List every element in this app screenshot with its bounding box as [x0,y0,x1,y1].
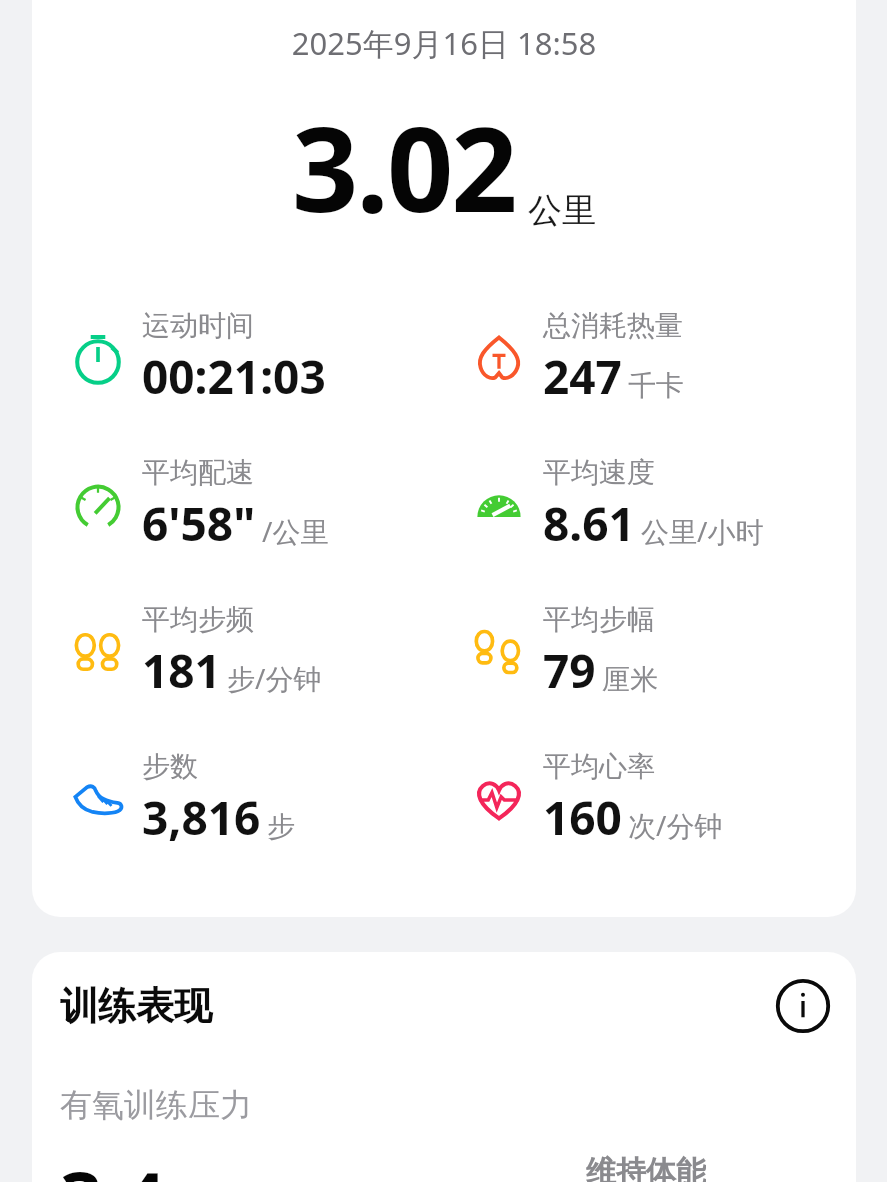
staticText: 公里/小时 [641,512,764,550]
button[interactable]: 总消耗热量 [444,308,856,408]
staticText: 平均心率 [543,749,655,784]
staticText: 6'58" [142,492,256,555]
staticText: 160 [543,786,622,849]
staticText: 训练表现 [60,982,212,1030]
staticText: 平均步幅 [543,602,655,637]
staticText: 3,816 [142,786,261,849]
staticText: 次/分钟 [628,806,723,844]
button[interactable]: 平均速度 [444,455,856,555]
button[interactable]: 运动时间 [32,308,444,408]
button[interactable]: 平均步频 [32,602,444,702]
staticText: 79 [543,639,596,702]
staticText: 步数 [142,749,198,784]
staticText: 平均步频 [142,602,254,637]
staticText: 公里 [528,189,596,232]
button[interactable]: 平均配速 [32,455,444,555]
staticText: 有氧训练压力 [60,1085,252,1125]
button[interactable]: 平均心率 [444,749,856,849]
staticText: 3.4 [60,1147,166,1182]
staticText: 181 [142,639,221,702]
staticText: 3.02 [292,88,516,246]
staticText: 平均配速 [142,455,254,490]
staticText: 厘米 [602,662,658,697]
staticText: 00:21:03 [142,345,326,408]
button[interactable]: 平均步幅 [444,602,856,702]
staticText: 247 [543,345,622,408]
button[interactable]: 信息 [774,977,832,1035]
staticText: 运动时间 [142,308,254,343]
staticText: /公里 [262,512,329,550]
staticText: 8.61 [543,492,635,555]
staticText: 千卡 [628,368,684,403]
button[interactable]: 步数 [32,749,444,849]
staticText: 步 [267,809,295,844]
staticText: 维持体能 [586,1153,706,1182]
staticText: 2025年9月16日 18:58 [32,22,856,64]
staticText: 平均速度 [543,455,655,490]
staticText: 总消耗热量 [543,308,683,343]
staticText: 步/分钟 [227,659,322,697]
